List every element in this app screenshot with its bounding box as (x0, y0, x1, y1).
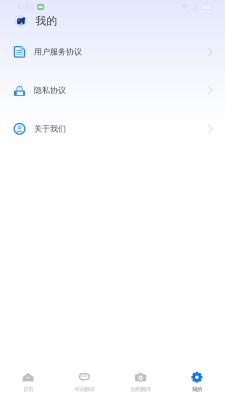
staticText: 1:30 (17, 2, 34, 12)
button[interactable]: 首页 (0, 371, 56, 393)
staticText: 拍照翻译 (131, 386, 151, 392)
button[interactable]: 隐私协议 (0, 71, 225, 110)
staticText: 隐私协议 (34, 85, 66, 95)
button[interactable]: 对话翻译 (56, 371, 112, 393)
staticText: 关于我们 (34, 124, 66, 134)
staticText: 用户服务协议 (34, 47, 82, 57)
staticText: 首页 (23, 386, 33, 392)
button[interactable]: 拍照翻译 (112, 371, 169, 393)
staticText: 我的 (36, 14, 58, 27)
button[interactable]: 关于我们 (0, 110, 225, 148)
button[interactable]: 用户服务协议 (0, 33, 225, 71)
staticText: 我的 (192, 386, 202, 392)
button[interactable]: 我的 (169, 371, 225, 393)
staticText: 对话翻译 (74, 386, 94, 392)
